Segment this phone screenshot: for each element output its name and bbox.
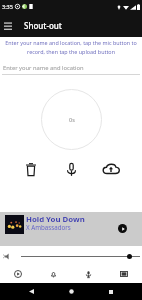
button[interactable]: Home (63, 283, 80, 300)
button[interactable]: Cast screen (117, 267, 131, 281)
staticText: 3:35 (2, 3, 13, 10)
button[interactable]: Record (61, 159, 81, 179)
button[interactable]: Microphone volume (81, 267, 95, 281)
staticText: X Ambassadors (26, 223, 71, 231)
button[interactable]: Open navigation menu (0, 14, 16, 36)
button[interactable]: Upload (101, 159, 121, 179)
button[interactable]: Back (23, 283, 40, 300)
button[interactable]: Media volume (11, 267, 25, 281)
staticText: Enter your name and location (3, 64, 84, 72)
staticText: Enter your name and location, tap the mi… (5, 39, 137, 55)
staticText: Hold You Down (26, 214, 85, 225)
button[interactable]: Ring volume (46, 267, 60, 281)
button[interactable]: Hold You Down (0, 212, 142, 246)
button[interactable]: Delete recording (21, 159, 41, 179)
staticText: 0s (69, 116, 75, 123)
button[interactable]: Play (118, 224, 127, 233)
staticText: Shout-out (24, 20, 62, 31)
button[interactable]: Recent apps (102, 283, 119, 300)
button[interactable]: Volume (1, 250, 13, 262)
